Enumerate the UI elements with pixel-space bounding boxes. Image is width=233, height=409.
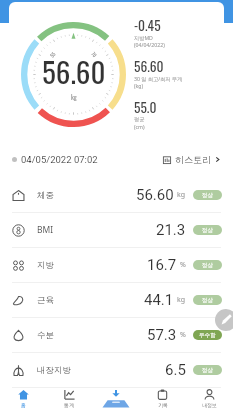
button[interactable]: 근육 <box>0 283 233 317</box>
staticText: 55.0 <box>134 97 157 117</box>
staticText: (kg) <box>134 82 144 89</box>
button[interactable]: 수분 <box>0 318 233 352</box>
staticText: 수분 <box>37 330 54 341</box>
button[interactable]: BMI <box>0 213 233 247</box>
staticText: 기록 <box>158 402 168 408</box>
staticText: (04/04/2022) <box>134 41 165 48</box>
staticText: 57.3 <box>147 326 177 344</box>
staticText: % <box>180 330 186 340</box>
staticText: % <box>180 260 186 270</box>
staticText: kg <box>71 92 77 102</box>
staticText: 56.60 <box>134 56 164 76</box>
staticText: 30 일 최고/최저 무게 <box>134 75 183 82</box>
staticText: 내장지방 <box>37 365 71 376</box>
staticText: 홈 <box>21 402 26 408</box>
staticText: 지방 <box>37 260 54 271</box>
button[interactable]: 체중 <box>0 178 233 212</box>
staticText: (cm) <box>134 123 145 130</box>
button[interactable]: 통계 <box>46 388 92 409</box>
staticText: 44.1 <box>144 291 174 309</box>
button[interactable]: 히스토리 <box>163 154 221 165</box>
staticText: 정상 <box>202 192 213 199</box>
staticText: 정상 <box>202 297 213 304</box>
button[interactable]: 내정보 <box>186 388 233 409</box>
staticText: kg <box>177 190 186 200</box>
staticText: 16.7 <box>147 256 177 274</box>
staticText: 정상 <box>202 262 213 269</box>
staticText: 근육 <box>37 295 54 306</box>
staticText: 55 <box>48 50 57 59</box>
staticText: 평균 <box>134 116 145 123</box>
button[interactable]: 내장지방 <box>0 353 233 387</box>
button[interactable]: 홈 <box>0 388 46 409</box>
staticText: 21.3 <box>156 221 186 239</box>
staticText: 지방MD <box>134 34 153 41</box>
staticText: 70 <box>90 50 99 59</box>
staticText: 04/05/2022 07:02 <box>21 154 98 165</box>
staticText: BMI <box>37 224 54 236</box>
button[interactable]: 측정 <box>92 388 139 409</box>
staticText: 우수함 <box>199 332 216 339</box>
staticText: 56.60 <box>42 49 106 92</box>
button[interactable]: 기록 <box>139 388 186 409</box>
staticText: 정상 <box>202 227 213 234</box>
button[interactable]: Edit <box>215 309 233 331</box>
staticText: kg <box>177 295 186 305</box>
staticText: 정상 <box>202 367 213 374</box>
staticText: -0.45 <box>134 15 161 35</box>
staticText: 6.5 <box>165 361 186 379</box>
staticText: 통계 <box>64 402 74 408</box>
staticText: 56.60 <box>136 186 174 204</box>
staticText: 히스토리 <box>175 154 211 165</box>
staticText: 내정보 <box>202 402 217 408</box>
staticText: 체중 <box>37 190 54 201</box>
button[interactable]: 지방 <box>0 248 233 282</box>
